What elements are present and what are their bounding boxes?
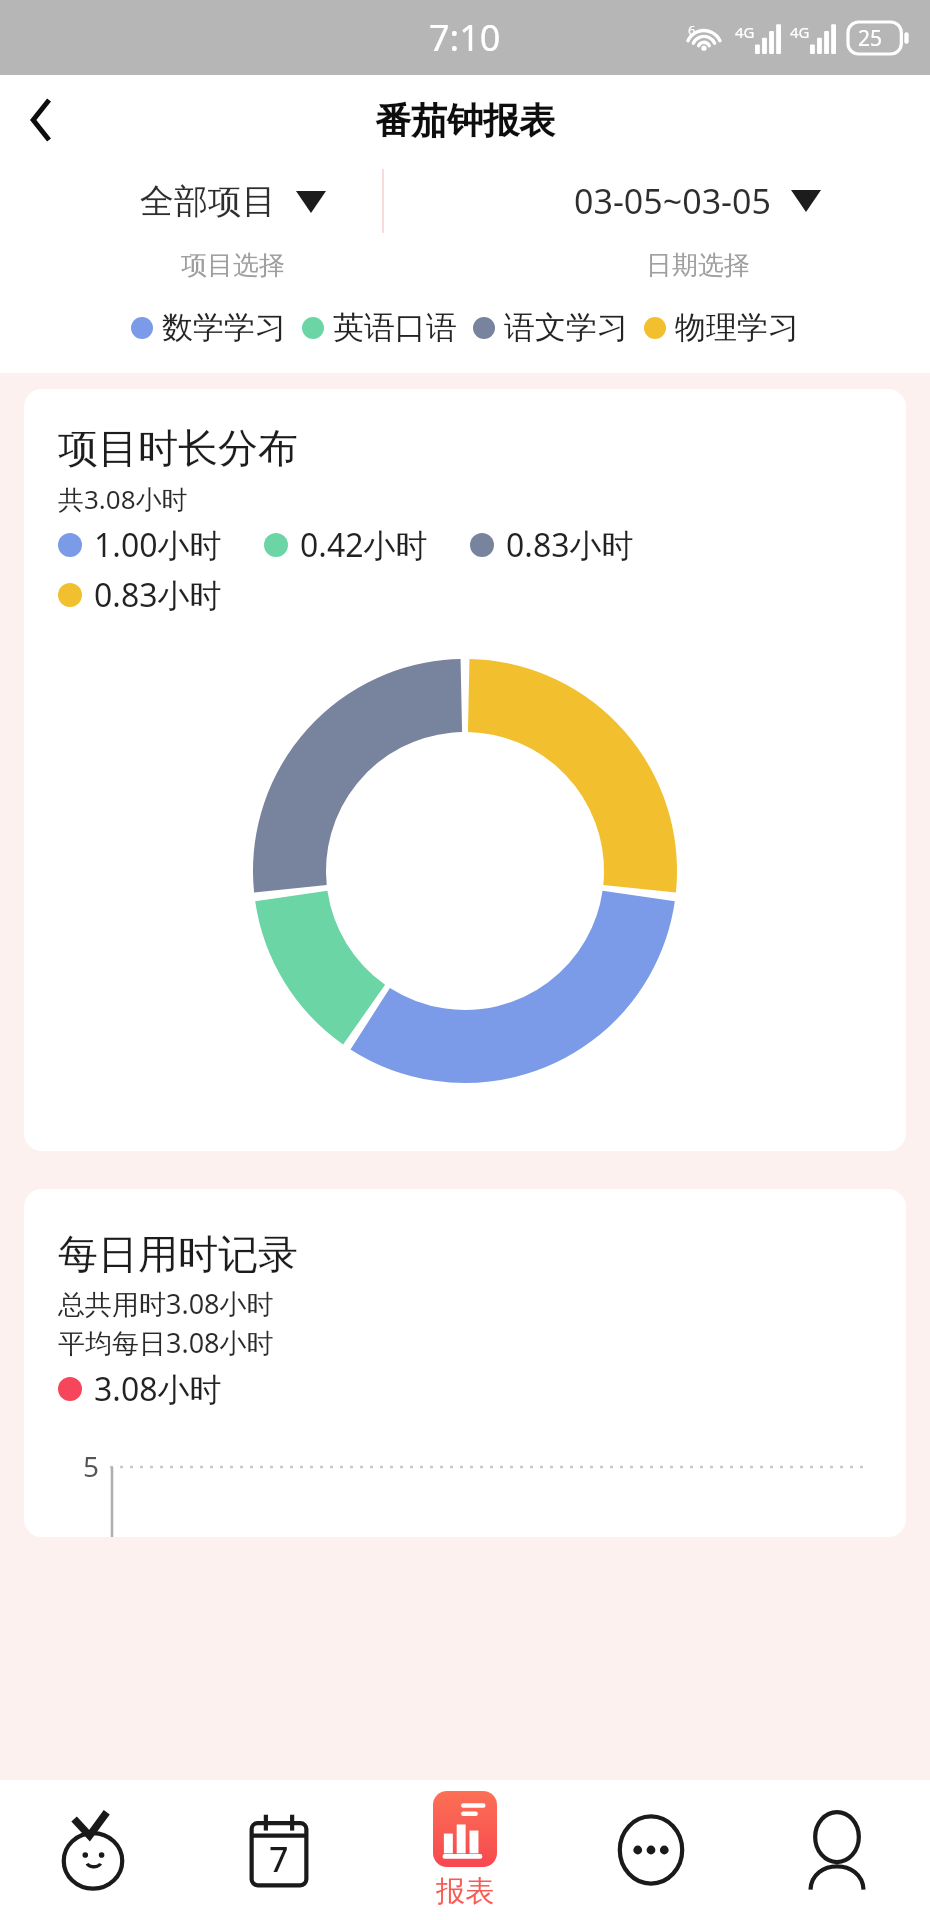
staticText: 03-05~03-05 [574, 178, 771, 224]
staticText: 4G [790, 22, 810, 42]
staticText: 共3.08小时 [58, 481, 188, 517]
staticText: 全部项目 [140, 180, 276, 223]
staticText: 物理学习 [675, 308, 799, 347]
button[interactable]: Reports [372, 1780, 558, 1920]
staticText: 0.42小时 [300, 523, 428, 567]
staticText: 报表 [436, 1873, 494, 1910]
staticText: 3.08小时 [94, 1367, 222, 1411]
staticText: 语文学习 [504, 308, 628, 347]
staticText: 6 [688, 21, 696, 39]
staticText: 每日用时记录 [58, 1229, 298, 1279]
button[interactable]: 每日用时记录 [24, 1189, 906, 1537]
staticText: 项目时长分布 [58, 423, 298, 473]
staticText: 英语口语 [333, 308, 457, 347]
staticText: 7:10 [429, 13, 501, 62]
staticText: 0.83小时 [506, 523, 634, 567]
staticText: 25 [858, 24, 883, 53]
staticText: 数学学习 [162, 308, 286, 347]
button[interactable]: More [558, 1780, 744, 1920]
button[interactable]: 全部项目 [124, 172, 342, 231]
staticText: 0.83小时 [94, 573, 222, 617]
staticText: 5 [83, 1447, 100, 1485]
button[interactable]: Pomodoro timer [0, 1780, 186, 1920]
staticText: 日期选择 [646, 249, 750, 282]
button[interactable]: 03-05~03-05 [558, 170, 837, 232]
staticText: 总共用时3.08小时 [58, 1285, 274, 1322]
button[interactable]: Profile [744, 1780, 930, 1920]
staticText: 项目选择 [181, 249, 285, 282]
staticText: 平均每日3.08小时 [58, 1324, 274, 1361]
staticText: 番茄钟报表 [375, 98, 555, 143]
staticText: 1.00小时 [94, 523, 222, 567]
button[interactable]: Calendar [186, 1780, 372, 1920]
staticText: 4G [735, 22, 755, 42]
staticText: 7 [269, 1836, 289, 1882]
button[interactable]: Back [14, 92, 70, 148]
button[interactable]: 项目时长分布 [24, 389, 906, 1151]
